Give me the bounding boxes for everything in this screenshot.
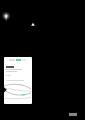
button[interactable]: Navigate [31, 22, 35, 26]
button[interactable]: Location marker [2, 11, 11, 20]
button[interactable] [4, 57, 32, 104]
